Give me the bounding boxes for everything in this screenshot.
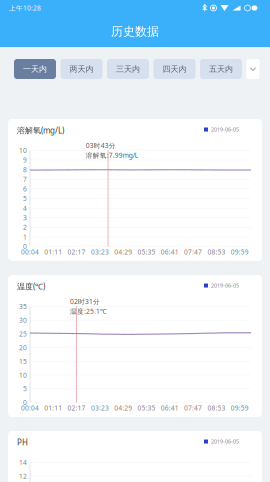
staticText: 06:41: [161, 404, 179, 412]
staticText: 四天内: [162, 64, 186, 74]
staticText: 03:23: [91, 404, 109, 412]
staticText: 04:29: [114, 404, 132, 412]
staticText: 2019-06-05: [211, 438, 239, 445]
staticText: 01:11: [44, 404, 62, 412]
staticText: 06:41: [161, 248, 179, 256]
staticText: 五天内: [209, 64, 233, 74]
button[interactable]: 更多选项: [246, 59, 259, 79]
staticText: 10: [19, 146, 27, 155]
staticText: 10: [19, 371, 27, 379]
staticText: 2019-06-05: [211, 126, 239, 133]
staticText: 09:59: [231, 404, 249, 412]
staticText: 上午10:28: [9, 4, 41, 12]
staticText: 02:17: [68, 248, 86, 256]
staticText: 07:47: [184, 404, 202, 412]
staticText: 8: [23, 165, 27, 174]
staticText: 2: [23, 223, 27, 232]
staticText: 0: [23, 398, 27, 407]
staticText: 溶解氧(mg/L): [17, 125, 64, 136]
button[interactable]: 四天内: [153, 59, 195, 79]
staticText: 02时31分: [70, 297, 100, 306]
staticText: 14: [19, 458, 27, 467]
staticText: 30: [19, 316, 27, 325]
staticText: 25: [19, 329, 27, 338]
button[interactable]: 一天内: [14, 59, 56, 79]
staticText: 12: [19, 472, 27, 481]
button[interactable]: 两天内: [60, 59, 102, 79]
staticText: 04:29: [114, 248, 132, 256]
staticText: 08:53: [207, 404, 225, 412]
staticText: 溶解氧:7.99mg/L: [86, 151, 138, 160]
staticText: 5: [23, 384, 27, 393]
staticText: 00:04: [21, 404, 39, 412]
button[interactable]: 三天内: [107, 59, 149, 79]
staticText: 3: [23, 213, 27, 222]
staticText: 20: [19, 343, 27, 352]
staticText: 00:04: [21, 248, 39, 256]
staticText: 03时43分: [86, 141, 116, 150]
staticText: 1: [23, 232, 27, 241]
staticText: 09:59: [231, 248, 249, 256]
staticText: 0: [23, 242, 27, 251]
staticText: 2019-06-05: [211, 282, 239, 289]
staticText: 01:11: [44, 248, 62, 256]
staticText: 4: [23, 204, 27, 212]
staticText: 历史数据: [111, 24, 159, 39]
staticText: 温度:25.1℃: [70, 307, 107, 316]
staticText: 07:47: [184, 248, 202, 256]
staticText: 35: [19, 302, 27, 311]
staticText: PH: [17, 437, 28, 448]
staticText: 03:23: [91, 248, 109, 256]
staticText: 两天内: [69, 64, 93, 74]
staticText: 三天内: [116, 64, 140, 74]
staticText: 08:53: [207, 248, 225, 256]
staticText: 7: [23, 175, 27, 184]
staticText: 一天内: [23, 64, 47, 74]
staticText: 02:17: [68, 404, 86, 412]
staticText: 6: [23, 184, 27, 193]
staticText: 5: [23, 194, 27, 203]
staticText: 温度(℃): [17, 281, 45, 292]
staticText: 9: [23, 156, 27, 164]
staticText: 05:35: [137, 248, 155, 256]
button[interactable]: 五天内: [200, 59, 242, 79]
staticText: 15: [19, 357, 27, 366]
staticText: 05:35: [137, 404, 155, 412]
